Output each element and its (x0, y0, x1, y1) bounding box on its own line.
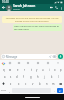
button[interactable]: x (15, 80, 22, 87)
staticText: ?123 (1, 89, 6, 92)
button[interactable]: y (34, 66, 40, 73)
button[interactable]: Backspace (57, 80, 64, 87)
staticText: w (9, 68, 12, 72)
staticText: 10:30 (2, 0, 9, 4)
button[interactable]: o (52, 66, 58, 73)
button[interactable]: w (7, 66, 14, 73)
button[interactable]: s (8, 73, 14, 80)
button[interactable]: Message (1, 54, 57, 59)
button[interactable]: l (55, 73, 62, 80)
staticText: . (54, 89, 55, 93)
button[interactable]: g (27, 73, 34, 80)
staticText: Hey! Are we still on for lunch tomorrow … (14, 25, 61, 31)
staticText: r (24, 68, 26, 72)
button[interactable]: i (46, 66, 52, 73)
button[interactable]: Hey! Are we still on for lunch tomorrow … (13, 24, 62, 31)
staticText: z (10, 82, 12, 86)
staticText: g (30, 75, 32, 79)
staticText: , (9, 89, 10, 93)
staticText: h (37, 75, 39, 79)
staticText: k (51, 75, 53, 79)
button[interactable]: m (50, 80, 57, 87)
button[interactable]: Settings (33, 60, 43, 66)
button[interactable]: e (14, 66, 21, 73)
button[interactable]: Profile photo (6, 5, 12, 11)
staticText: Message (6, 55, 18, 59)
staticText: f (23, 75, 24, 79)
button[interactable]: f (20, 73, 27, 80)
staticText: o (54, 68, 56, 72)
staticText: m (52, 82, 55, 86)
button[interactable]: t (28, 66, 34, 73)
button[interactable]: q (0, 66, 7, 73)
button[interactable]: Voice call (54, 5, 59, 10)
staticText: Sarah Johnson (13, 4, 36, 8)
button[interactable]: Voice input (53, 60, 63, 66)
staticText: y (36, 68, 38, 72)
staticText: j (44, 75, 45, 79)
button[interactable]: Google (1, 61, 5, 65)
button[interactable]: v (29, 80, 36, 87)
button[interactable]: Shift (0, 80, 7, 87)
staticText: a (4, 75, 6, 79)
button[interactable]: Messages and calls are end-to-end encryp… (2, 16, 62, 23)
staticText: v (32, 82, 34, 86)
staticText: e (17, 68, 19, 72)
button[interactable]: z (7, 80, 15, 87)
button[interactable]: . (52, 87, 56, 94)
button[interactable]: , (7, 87, 11, 94)
button[interactable]: More options (59, 6, 63, 10)
button[interactable]: p (58, 66, 64, 73)
button[interactable]: GIF (14, 60, 23, 66)
button[interactable]: Video call (49, 5, 54, 10)
button[interactable]: Clipboard (43, 60, 53, 66)
staticText: u (42, 68, 44, 72)
button[interactable]: d (14, 73, 20, 80)
staticText: q (3, 68, 5, 72)
staticText: i (49, 68, 50, 72)
button[interactable]: Back (1, 5, 6, 10)
staticText: l (58, 75, 59, 79)
staticText: n (46, 82, 48, 86)
button[interactable]: h (34, 73, 41, 80)
staticText: d (16, 75, 18, 79)
button[interactable]: j (41, 73, 48, 80)
staticText: Messages and calls are end-to-end encryp… (4, 17, 60, 23)
staticText: x (18, 82, 20, 86)
staticText: b (39, 82, 41, 86)
staticText: c (25, 82, 27, 86)
staticText: t (31, 68, 32, 72)
button[interactable]: Emoji (23, 60, 33, 66)
button[interactable]: r (21, 66, 28, 73)
button[interactable]: ?123 (0, 87, 7, 94)
staticText: online (13, 8, 20, 11)
button[interactable]: Enter (57, 88, 63, 93)
button[interactable]: k (48, 73, 55, 80)
button[interactable]: c (22, 80, 29, 87)
button[interactable]: b (36, 80, 43, 87)
staticText: s (10, 75, 12, 79)
button[interactable]: a (2, 73, 8, 80)
button[interactable]: u (40, 66, 46, 73)
button[interactable]: Stickers (5, 60, 14, 66)
staticText: p (60, 68, 62, 72)
button[interactable]: n (43, 80, 50, 87)
button[interactable]: Send voice message (58, 54, 63, 59)
